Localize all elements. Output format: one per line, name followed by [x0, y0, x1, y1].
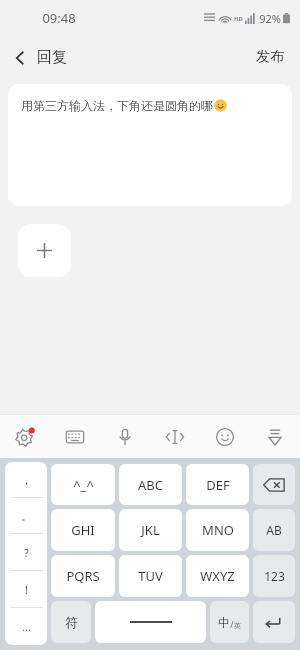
staticText: 回复: [37, 48, 67, 67]
button[interactable]: 符: [51, 601, 91, 643]
staticText: 用第三方输入法，下角还是圆角的哪: [21, 98, 213, 113]
staticText: 。: [21, 509, 32, 523]
staticText: ，: [21, 473, 32, 487]
button[interactable]: Voice input: [100, 415, 150, 458]
button[interactable]: 中/英: [210, 601, 249, 643]
button[interactable]: ?: [5, 534, 47, 571]
button[interactable]: 用第三方输入法，下角还是圆角的哪: [8, 84, 292, 206]
staticText: TUV: [138, 567, 163, 585]
button[interactable]: WXYZ: [186, 555, 249, 597]
staticText: ^_^: [73, 476, 94, 494]
staticText: ABC: [138, 476, 163, 494]
button[interactable]: ^_^: [51, 464, 115, 505]
staticText: ?: [24, 545, 29, 560]
button[interactable]: Move cursor: [150, 415, 200, 458]
button[interactable]: Back: [0, 42, 79, 73]
button[interactable]: Add image: [18, 224, 71, 277]
staticText: /: [230, 618, 234, 630]
staticText: 发布: [256, 48, 284, 66]
button[interactable]: Emoji: [200, 415, 250, 458]
button[interactable]: TUV: [119, 555, 182, 597]
button[interactable]: Backspace: [253, 464, 295, 505]
button[interactable]: Space: [95, 601, 206, 643]
button[interactable]: GHI: [51, 509, 115, 551]
staticText: WXYZ: [200, 567, 235, 585]
staticText: MNO: [202, 521, 234, 539]
staticText: JKL: [141, 521, 160, 539]
button[interactable]: !: [5, 571, 47, 608]
button[interactable]: PQRS: [51, 555, 115, 597]
button[interactable]: …: [5, 608, 47, 645]
staticText: DEF: [206, 476, 230, 494]
staticText: AB: [266, 522, 282, 538]
staticText: 123: [264, 568, 285, 584]
staticText: 英: [234, 621, 241, 630]
button[interactable]: 123: [253, 555, 295, 597]
staticText: !: [25, 582, 28, 597]
staticText: …: [22, 619, 31, 634]
button[interactable]: 。: [5, 498, 47, 534]
other: Back: [12, 50, 28, 66]
button[interactable]: DEF: [186, 464, 249, 505]
button[interactable]: 发布: [240, 40, 300, 74]
button[interactable]: MNO: [186, 509, 249, 551]
staticText: GHI: [71, 521, 95, 539]
button[interactable]: AB: [253, 509, 295, 551]
staticText: 符: [65, 614, 78, 630]
staticText: 09:48: [42, 9, 76, 27]
staticText: 中: [218, 615, 230, 630]
button[interactable]: Settings: [0, 415, 50, 458]
button[interactable]: ABC: [119, 464, 182, 505]
staticText: 92%: [259, 11, 281, 26]
staticText: PQRS: [66, 567, 100, 585]
staticText: HD: [234, 15, 243, 23]
button[interactable]: JKL: [119, 509, 182, 551]
button[interactable]: Keyboard: [50, 415, 100, 458]
button[interactable]: Hide keyboard: [250, 415, 300, 458]
button[interactable]: Enter: [253, 601, 295, 643]
button[interactable]: ，: [5, 462, 47, 498]
